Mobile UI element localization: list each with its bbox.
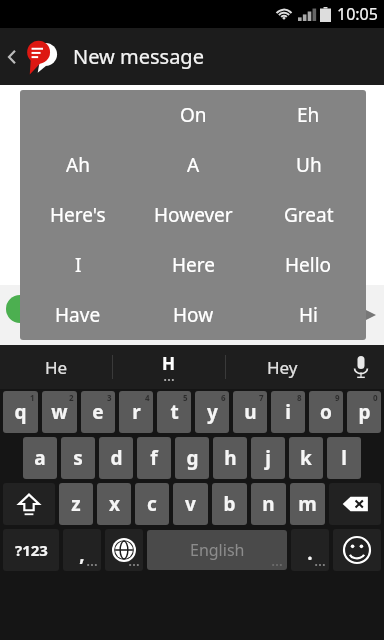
staticText: Hi [299, 302, 318, 328]
button[interactable]: Eh [251, 90, 366, 140]
staticText: Eh [297, 102, 320, 128]
button[interactable]: Hey [226, 345, 338, 389]
staticText: 0 [373, 392, 378, 403]
button[interactable]: Hi [251, 290, 366, 340]
staticText: z [71, 491, 81, 517]
button[interactable]: Here's [20, 190, 136, 240]
button[interactable]: u [233, 391, 267, 433]
staticText: 1 [30, 392, 35, 403]
staticText: j [265, 445, 271, 471]
button[interactable]: English [147, 530, 287, 570]
button[interactable]: However [136, 190, 251, 240]
button[interactable]: z [59, 483, 93, 525]
button[interactable]: k [289, 437, 323, 479]
button[interactable]: n [251, 483, 286, 525]
button[interactable]: Have [20, 290, 136, 340]
staticText: w [51, 399, 68, 425]
button[interactable]: Hello [251, 240, 366, 290]
staticText: Here [172, 252, 215, 278]
staticText: New message [73, 43, 204, 70]
staticText: l [341, 445, 347, 471]
button[interactable]: ?123 [3, 529, 59, 571]
button[interactable]: Shift [3, 483, 55, 525]
button[interactable]: Backspace [329, 483, 381, 525]
button[interactable]: g [175, 437, 209, 479]
staticText: ?123 [15, 540, 48, 560]
staticText: c [147, 491, 157, 517]
staticText: Have [55, 302, 101, 328]
staticText: 8 [297, 392, 302, 403]
staticText: a [34, 445, 46, 471]
button[interactable]: p [347, 391, 381, 433]
staticText: 2 [69, 392, 74, 403]
button[interactable]: s [61, 437, 95, 479]
staticText: On [180, 102, 207, 128]
staticText: H [162, 352, 176, 375]
button[interactable]: b [212, 483, 247, 525]
staticText: t [170, 399, 179, 425]
button[interactable]: m [290, 483, 325, 525]
button[interactable]: Change language [105, 529, 143, 571]
staticText: , [79, 541, 85, 567]
button[interactable]: Attach [6, 295, 34, 323]
button[interactable]: H [113, 345, 225, 389]
button[interactable]: l [327, 437, 361, 479]
staticText: Great [284, 202, 334, 228]
staticText: 5 [183, 392, 188, 403]
staticText: English [190, 539, 245, 561]
button[interactable]: On [136, 90, 251, 140]
button[interactable]: a [23, 437, 57, 479]
button[interactable]: c [135, 483, 169, 525]
staticText: s [73, 445, 83, 471]
staticText: 10:05 [337, 3, 378, 25]
staticText: How [173, 302, 214, 328]
staticText: n [262, 491, 275, 517]
button[interactable]: f [137, 437, 171, 479]
button[interactable]: j [251, 437, 285, 479]
button[interactable]: t [157, 391, 191, 433]
button[interactable]: Emoji [333, 529, 381, 571]
staticText: 3 [107, 392, 112, 403]
staticText: Hey [267, 356, 298, 379]
button[interactable]: i [271, 391, 305, 433]
staticText: e [92, 399, 104, 425]
button[interactable]: I [20, 240, 136, 290]
staticText: y [207, 399, 218, 425]
staticText: b [223, 491, 236, 517]
button[interactable]: Comma [63, 529, 101, 571]
button[interactable]: Here [136, 240, 251, 290]
button[interactable]: x [97, 483, 131, 525]
button[interactable]: Ah [20, 140, 136, 190]
staticText: k [300, 445, 312, 471]
button[interactable]: Voice input [338, 345, 384, 389]
staticText: o [320, 399, 332, 425]
staticText: h [224, 445, 237, 471]
button[interactable]: q [3, 391, 38, 433]
button[interactable]: r [119, 391, 153, 433]
staticText: d [110, 445, 123, 471]
staticText: m [298, 491, 317, 517]
button[interactable]: Great [251, 190, 366, 240]
staticText: i [285, 399, 291, 425]
button[interactable]: Period [291, 529, 329, 571]
button[interactable]: v [173, 483, 208, 525]
button[interactable]: Uh [251, 140, 366, 190]
staticText: 6 [221, 392, 226, 403]
button[interactable]: h [213, 437, 247, 479]
button[interactable]: A [136, 140, 251, 190]
button[interactable]: o [309, 391, 343, 433]
staticText: Ah [66, 152, 90, 178]
button[interactable]: Back [0, 28, 69, 85]
button[interactable]: y [195, 391, 229, 433]
staticText: He [45, 356, 68, 379]
button[interactable]: e [81, 391, 115, 433]
button[interactable]: He [0, 345, 112, 389]
staticText: q [14, 399, 27, 425]
button[interactable]: How [136, 290, 251, 340]
staticText: v [185, 491, 196, 517]
button[interactable]: w [42, 391, 77, 433]
staticText: Here's [50, 202, 106, 228]
button[interactable]: d [99, 437, 133, 479]
staticText: g [186, 445, 199, 471]
